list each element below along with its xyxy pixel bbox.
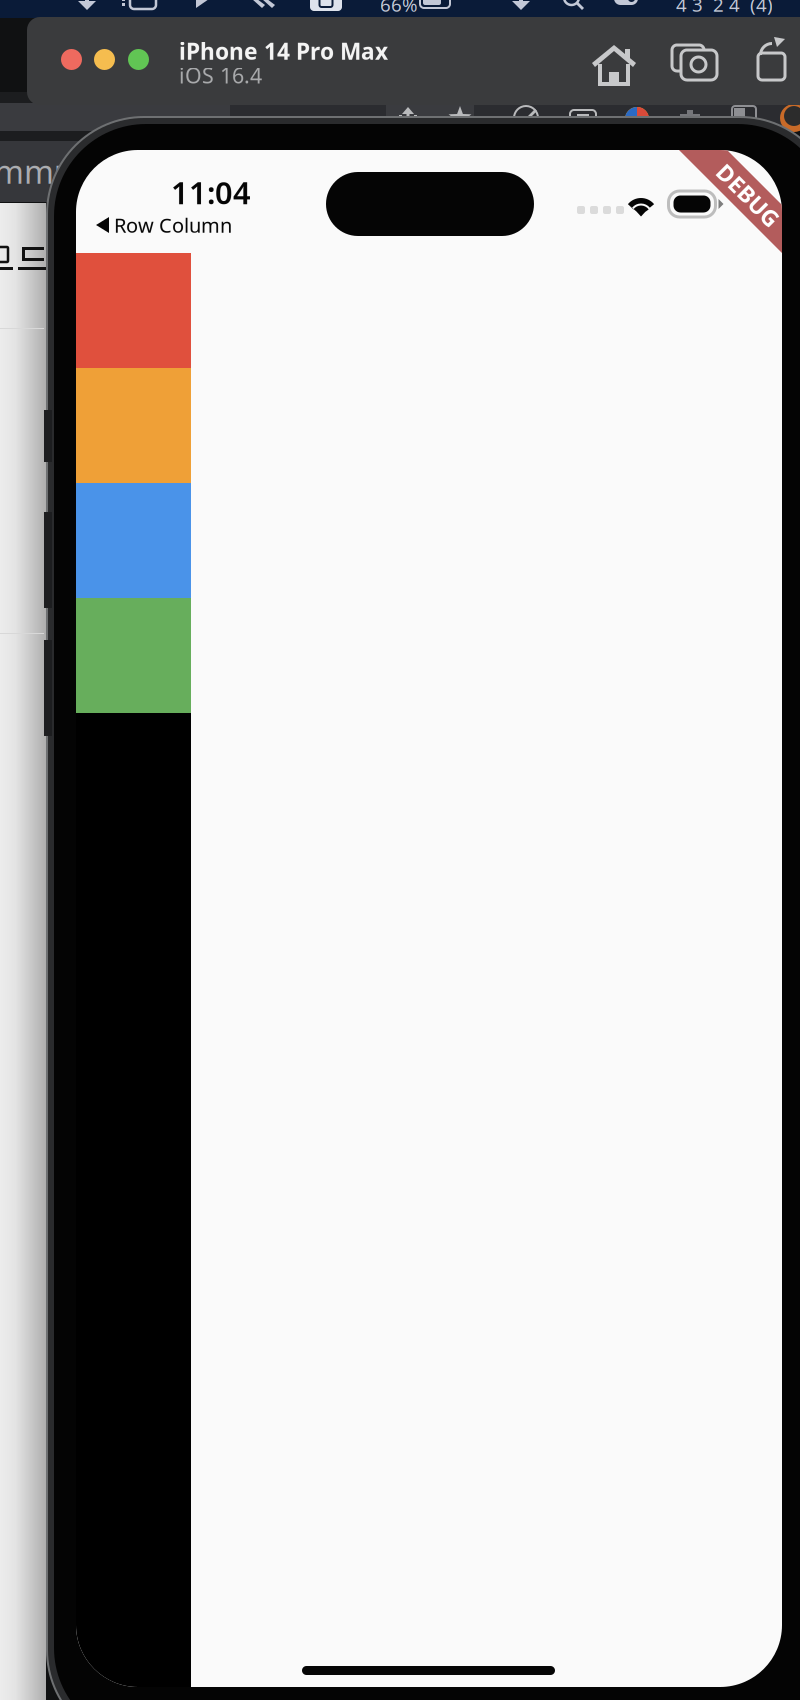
button[interactable]: Zoom [128,49,149,70]
staticText: 66% [380,0,418,17]
button[interactable]: Share [755,40,789,82]
button[interactable]: Row Column [96,211,296,239]
button[interactable]: Screenshot [672,43,719,83]
button[interactable]: Minimise [94,49,115,70]
staticText: 11:04 [171,172,251,213]
staticText: Row Column [114,212,232,238]
staticText: DEBUG [709,180,787,210]
staticText: 4 3 2 4 (4) [676,0,773,17]
staticText: mmunity [0,150,130,192]
staticText: iPhone 14 Pro Max [179,36,388,66]
button[interactable]: Close [61,49,82,70]
button[interactable]: Home [592,44,629,80]
staticText: iOS 16.4 [179,61,262,89]
